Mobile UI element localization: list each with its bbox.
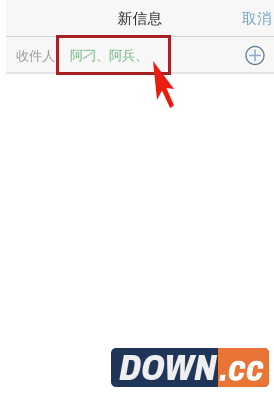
staticText: 新信息 bbox=[117, 9, 162, 27]
button[interactable]: Add recipient bbox=[246, 46, 264, 64]
staticText: 收件人: bbox=[16, 47, 59, 64]
staticText: DOWN bbox=[119, 347, 217, 388]
staticText: 阿刁、阿兵、 bbox=[70, 47, 148, 64]
button[interactable]: 取消 bbox=[240, 0, 274, 36]
staticText: 取消 bbox=[242, 9, 272, 27]
staticText: .cc bbox=[219, 348, 264, 387]
